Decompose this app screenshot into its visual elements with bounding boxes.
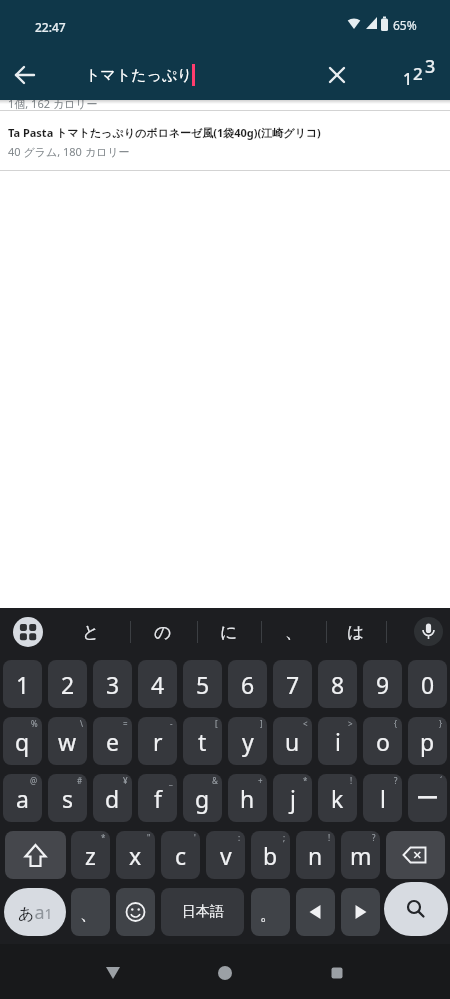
staticText: e bbox=[106, 726, 119, 757]
button[interactable]: 1 bbox=[398, 53, 448, 97]
button[interactable]: と bbox=[63, 612, 119, 652]
button[interactable]: 、 bbox=[71, 888, 110, 936]
button[interactable]: 1 bbox=[3, 660, 42, 708]
button[interactable]: l bbox=[363, 774, 402, 822]
staticText: = bbox=[123, 718, 128, 729]
staticText: k bbox=[331, 783, 344, 814]
button[interactable]: q bbox=[3, 717, 42, 765]
staticText: q bbox=[15, 726, 30, 757]
button[interactable]: 0 bbox=[408, 660, 447, 708]
button[interactable]: 5 bbox=[183, 660, 222, 708]
staticText: 5 bbox=[196, 669, 210, 700]
staticText: 1 bbox=[16, 669, 30, 700]
button[interactable] bbox=[386, 831, 445, 879]
staticText: ; bbox=[283, 832, 286, 843]
staticText: \ bbox=[80, 718, 83, 729]
button[interactable]: r bbox=[138, 717, 177, 765]
button[interactable]: 9 bbox=[363, 660, 402, 708]
button[interactable]: p bbox=[408, 717, 447, 765]
button[interactable] bbox=[384, 882, 448, 936]
staticText: 日本語 bbox=[182, 903, 224, 921]
button[interactable]: f bbox=[138, 774, 177, 822]
button[interactable]: n bbox=[296, 831, 335, 879]
staticText: * bbox=[101, 832, 106, 843]
button[interactable]: 3 bbox=[93, 660, 132, 708]
button[interactable] bbox=[414, 617, 443, 646]
staticText: 2 bbox=[61, 669, 75, 700]
staticText: トマトたっぷり bbox=[85, 66, 193, 85]
staticText: 3 bbox=[106, 669, 120, 700]
button[interactable]: h bbox=[228, 774, 267, 822]
button[interactable]: に bbox=[201, 612, 257, 652]
button[interactable]: y bbox=[228, 717, 267, 765]
button[interactable]: v bbox=[206, 831, 245, 879]
button[interactable]: s bbox=[48, 774, 87, 822]
staticText: a bbox=[16, 783, 29, 814]
staticText: 40 グラム, 180 カロリー bbox=[8, 144, 130, 159]
button[interactable] bbox=[341, 888, 380, 936]
button[interactable]: d bbox=[93, 774, 132, 822]
button[interactable]: x bbox=[116, 831, 155, 879]
button[interactable]: Ta Pasta トマトたっぷりのボロネーゼ風(1袋40g)(江崎グリコ) bbox=[0, 111, 450, 170]
button[interactable]: 。 bbox=[251, 888, 290, 936]
staticText: は bbox=[347, 622, 365, 643]
staticText: 3 bbox=[425, 54, 436, 79]
button[interactable]: i bbox=[318, 717, 357, 765]
button[interactable]: 2 bbox=[48, 660, 87, 708]
staticText: r bbox=[153, 726, 163, 757]
button[interactable]: c bbox=[161, 831, 200, 879]
staticText: 6 bbox=[241, 669, 255, 700]
button[interactable]: 日本語 bbox=[161, 888, 244, 936]
staticText: w bbox=[58, 726, 77, 757]
staticText: 1個, 162 カロリー bbox=[8, 100, 98, 111]
button[interactable] bbox=[309, 944, 365, 999]
staticText: [ bbox=[215, 718, 218, 729]
button[interactable] bbox=[3, 53, 47, 97]
staticText: n bbox=[308, 840, 323, 871]
staticText: } bbox=[439, 718, 443, 729]
staticText: 、 bbox=[80, 904, 97, 925]
button[interactable] bbox=[116, 888, 155, 936]
button[interactable] bbox=[85, 944, 141, 999]
button[interactable]: の bbox=[135, 612, 191, 652]
button[interactable]: 4 bbox=[138, 660, 177, 708]
button[interactable]: j bbox=[273, 774, 312, 822]
staticText: あa1 bbox=[18, 900, 53, 925]
staticText: 9 bbox=[376, 669, 390, 700]
button[interactable] bbox=[13, 617, 43, 647]
button[interactable]: b bbox=[251, 831, 290, 879]
staticText: 8 bbox=[331, 669, 345, 700]
button[interactable]: は bbox=[328, 612, 384, 652]
button[interactable]: u bbox=[273, 717, 312, 765]
staticText: { bbox=[394, 718, 398, 729]
staticText: Ta Pasta トマトたっぷりのボロネーゼ風(1袋40g)(江崎グリコ) bbox=[8, 125, 321, 140]
button[interactable]: z bbox=[71, 831, 110, 879]
button[interactable]: ー bbox=[408, 774, 447, 822]
staticText: m bbox=[350, 840, 372, 871]
staticText: ? bbox=[394, 775, 398, 786]
button[interactable] bbox=[296, 888, 335, 936]
button[interactable]: a bbox=[3, 774, 42, 822]
staticText: ? bbox=[372, 832, 376, 843]
button[interactable]: w bbox=[48, 717, 87, 765]
button[interactable]: 8 bbox=[318, 660, 357, 708]
button[interactable]: m bbox=[341, 831, 380, 879]
button[interactable]: g bbox=[183, 774, 222, 822]
staticText: i bbox=[335, 726, 341, 757]
button[interactable] bbox=[5, 831, 66, 879]
staticText: > bbox=[348, 718, 353, 729]
button[interactable]: o bbox=[363, 717, 402, 765]
staticText: - bbox=[170, 718, 173, 729]
staticText: 。 bbox=[260, 904, 277, 925]
button[interactable] bbox=[315, 53, 359, 97]
button[interactable]: t bbox=[183, 717, 222, 765]
button[interactable]: 6 bbox=[228, 660, 267, 708]
button[interactable]: e bbox=[93, 717, 132, 765]
button[interactable] bbox=[197, 944, 253, 999]
staticText: ! bbox=[328, 832, 331, 843]
button[interactable]: 、 bbox=[265, 612, 321, 652]
button[interactable]: 7 bbox=[273, 660, 312, 708]
staticText: f bbox=[154, 783, 162, 814]
button[interactable]: あa1 bbox=[4, 888, 66, 936]
button[interactable]: k bbox=[318, 774, 357, 822]
